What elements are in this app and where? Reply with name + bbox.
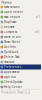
- staticText: Help Center: [4, 85, 22, 89]
- button[interactable]: Help Center: [0, 84, 41, 89]
- button[interactable]: Statistics: [0, 59, 41, 64]
- staticText: Statistics: [4, 60, 14, 64]
- button[interactable]: Sign Out: [0, 74, 41, 79]
- staticText: Preferences: [4, 65, 21, 69]
- button[interactable]: Open Recent: [0, 9, 41, 14]
- staticText: Move to Bin: [4, 35, 21, 39]
- staticText: New Session: [4, 5, 20, 9]
- staticText: Pomodoro Timer 2.4: [1, 91, 30, 94]
- button[interactable]: Duplicate: [0, 19, 41, 24]
- staticText: Quick Look: [4, 50, 18, 54]
- staticText: Delete Task: [4, 55, 19, 59]
- staticText: Pomo: [1, 0, 11, 5]
- staticText: Rename: [4, 25, 15, 29]
- staticText: ⌘R: [35, 30, 40, 34]
- button[interactable]: Move to Bin: [0, 34, 41, 39]
- staticText: Check Update: [4, 80, 23, 84]
- button[interactable]: Preferences: [0, 64, 41, 69]
- staticText: Compress: [4, 30, 17, 34]
- staticText: Get Info: [4, 45, 16, 49]
- staticText: Sign Out: [4, 75, 16, 79]
- button[interactable]: Get Info: [0, 44, 41, 49]
- staticText: Duplicate: [4, 20, 17, 24]
- button[interactable]: Quick Look: [0, 49, 41, 54]
- staticText: Save Report: [4, 15, 20, 19]
- button[interactable]: Share Sheet: [0, 39, 41, 44]
- button[interactable]: New Session: [0, 4, 41, 9]
- staticText: ⌘S: [36, 15, 40, 19]
- button[interactable]: Compress: [0, 29, 41, 34]
- staticText: Open Recent: [4, 10, 23, 14]
- button[interactable]: Delete Task: [0, 54, 41, 59]
- button[interactable]: Rename: [0, 24, 41, 29]
- staticText: Share Sheet: [4, 40, 20, 44]
- button[interactable]: Save Report: [0, 14, 41, 19]
- button[interactable]: Appearance: [0, 69, 41, 74]
- button[interactable]: Check Update: [0, 79, 41, 84]
- staticText: Appearance: [4, 70, 20, 74]
